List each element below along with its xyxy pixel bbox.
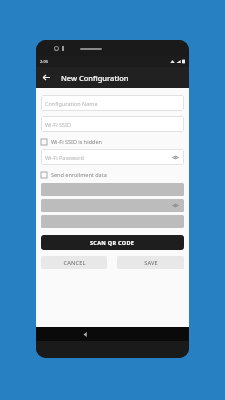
button[interactable]: Show password (171, 153, 180, 162)
button[interactable]: Show password (171, 201, 180, 210)
staticText: SCAN QR CODE (90, 239, 135, 246)
staticText: Wi-Fi SSID is hidden (51, 138, 102, 145)
staticText: 2:05 (40, 59, 48, 64)
button[interactable]: Configuration Name (41, 95, 184, 111)
button[interactable]: CANCEL (41, 256, 107, 269)
button[interactable]: Back (36, 67, 57, 88)
staticText: Send enrollment data (51, 171, 107, 178)
button[interactable]: Send enrollment data (41, 169, 184, 180)
button[interactable]: Wi-Fi SSID is hidden (41, 136, 184, 147)
button[interactable]: SAVE (117, 256, 184, 269)
button[interactable]: SCAN QR CODE (41, 235, 184, 250)
staticText: Configuration Name (45, 100, 98, 107)
button[interactable]: Wi-Fi SSID (41, 116, 184, 132)
staticText: CANCEL (63, 259, 86, 266)
button[interactable]: Wi-Fi Password (41, 149, 184, 165)
staticText: Wi-Fi SSID (45, 121, 71, 128)
staticText: SAVE (144, 259, 158, 266)
button[interactable]: Back (80, 329, 90, 339)
staticText: New Configuration (61, 73, 129, 83)
staticText: Wi-Fi Password (45, 154, 84, 161)
